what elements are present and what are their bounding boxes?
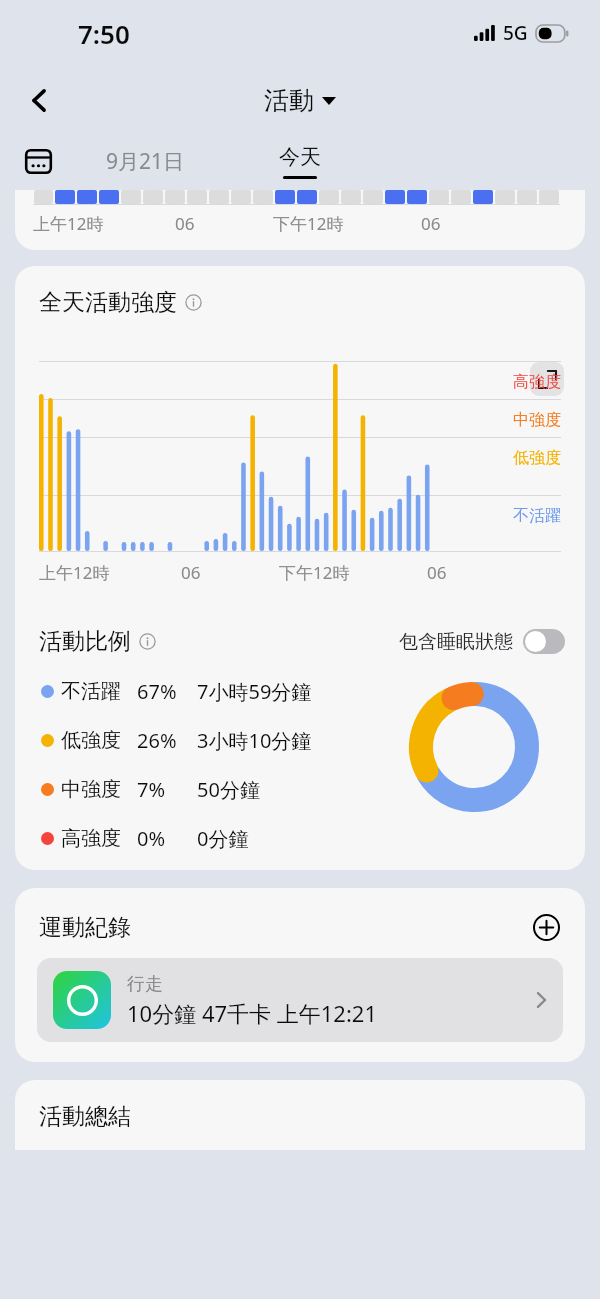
button[interactable]: 活動 bbox=[264, 85, 336, 116]
staticText: 活動總結 bbox=[39, 1102, 131, 1131]
staticText: 06 bbox=[175, 212, 195, 235]
staticText: 不活躍 bbox=[61, 679, 121, 704]
staticText: 中強度 bbox=[513, 410, 561, 430]
staticText: 運動紀錄 bbox=[39, 913, 131, 942]
staticText: 活動 bbox=[264, 85, 314, 116]
staticText: 上午12時 bbox=[33, 212, 104, 235]
staticText: 06 bbox=[427, 561, 447, 584]
button[interactable]: 今天 bbox=[279, 144, 321, 179]
staticText: 包含睡眠狀態 bbox=[399, 630, 513, 654]
staticText: 今天 bbox=[279, 144, 321, 170]
button[interactable]: 9月21日 bbox=[106, 147, 185, 176]
staticText: 26% bbox=[137, 727, 177, 754]
staticText: 5G bbox=[503, 20, 528, 46]
staticText: 06 bbox=[421, 212, 441, 235]
button[interactable]: 行走 bbox=[37, 958, 563, 1042]
button[interactable]: 返回 bbox=[14, 75, 64, 125]
staticText: 不活躍 bbox=[513, 506, 561, 526]
staticText: 7% bbox=[137, 776, 166, 803]
staticText: 0% bbox=[137, 825, 166, 852]
staticText: 3小時10分鐘 bbox=[197, 727, 312, 754]
staticText: 上午12時 bbox=[39, 561, 110, 584]
staticText: 活動比例 bbox=[39, 627, 131, 656]
staticText: 06 bbox=[181, 561, 201, 584]
staticText: 67% bbox=[137, 678, 177, 705]
staticText: 全天活動強度 bbox=[39, 288, 177, 317]
staticText: 低強度 bbox=[513, 448, 561, 468]
staticText: 7小時59分鐘 bbox=[197, 678, 312, 705]
button[interactable]: 行事曆 bbox=[16, 139, 60, 183]
button[interactable]: 包含睡眠狀態 bbox=[399, 629, 565, 654]
staticText: 高強度 bbox=[513, 372, 561, 392]
staticText: 下午12時 bbox=[279, 561, 350, 584]
staticText: 0分鐘 bbox=[197, 825, 249, 852]
staticText: 7:50 bbox=[78, 16, 130, 51]
staticText: 高強度 bbox=[61, 826, 121, 851]
staticText: 行走 bbox=[127, 973, 163, 996]
button[interactable]: 新增運動 bbox=[529, 910, 563, 944]
staticText: 50分鐘 bbox=[197, 776, 260, 803]
staticText: 10分鐘 47千卡 上午12:21 bbox=[127, 998, 378, 1028]
button[interactable]: 全螢幕 bbox=[530, 362, 564, 396]
staticText: 下午12時 bbox=[273, 212, 344, 235]
staticText: 中強度 bbox=[61, 777, 121, 802]
staticText: 低強度 bbox=[61, 728, 121, 753]
